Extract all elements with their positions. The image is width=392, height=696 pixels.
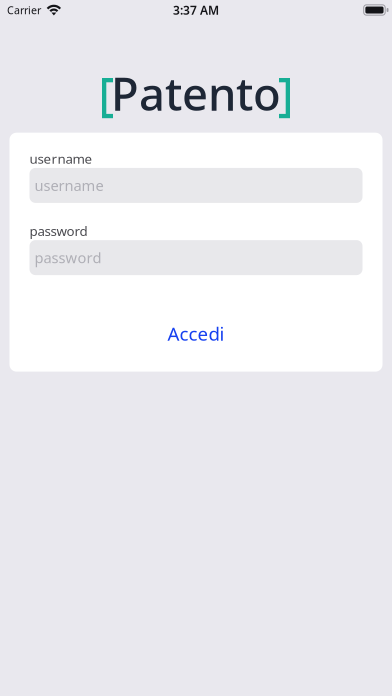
staticText: Carrier — [7, 3, 41, 17]
staticText: password — [34, 248, 101, 267]
staticText: Accedi — [167, 321, 224, 346]
button[interactable]: username — [29, 168, 362, 203]
button[interactable]: password — [29, 240, 362, 275]
staticText: username — [29, 150, 92, 167]
staticText: password — [29, 222, 87, 240]
staticText: 3:37 AM — [173, 2, 219, 18]
staticText: username — [34, 176, 103, 195]
button[interactable]: Accedi — [29, 322, 362, 346]
staticText: Patento — [111, 63, 281, 123]
